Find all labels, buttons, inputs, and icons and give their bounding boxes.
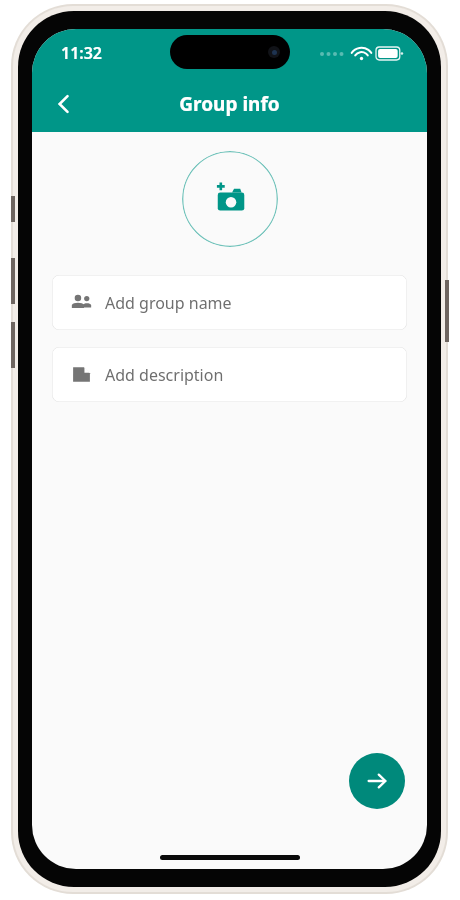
button[interactable]: Back xyxy=(40,80,88,128)
button[interactable]: Next xyxy=(349,753,405,809)
staticText: Add group name xyxy=(105,292,232,314)
staticText: Add description xyxy=(105,364,224,386)
button[interactable]: Add group photo xyxy=(182,151,278,247)
button[interactable]: Add group name xyxy=(52,275,407,330)
staticText: 11:32 xyxy=(61,42,103,64)
staticText: Group info xyxy=(179,91,280,117)
button[interactable]: Add description xyxy=(52,347,407,402)
